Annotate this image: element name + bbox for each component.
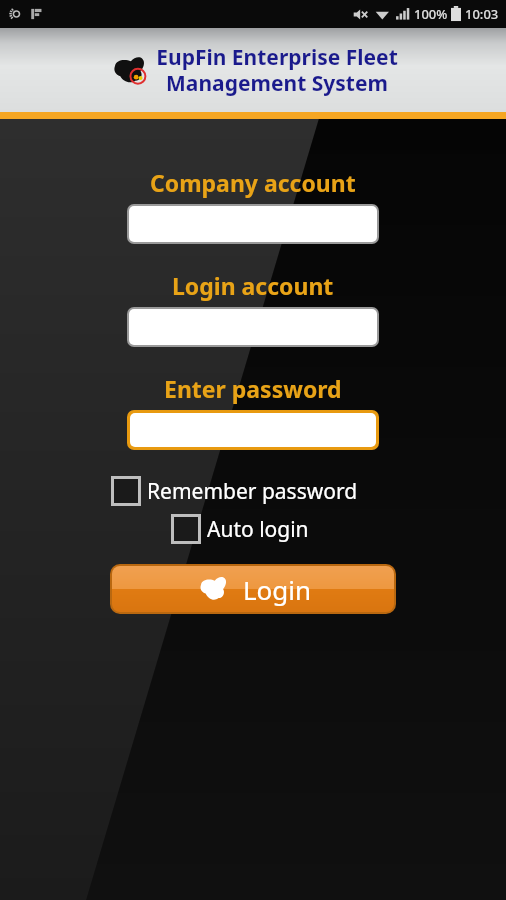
button[interactable]: Remember password	[111, 476, 395, 506]
staticText: Remember password	[147, 477, 358, 506]
staticText: 100%	[414, 5, 448, 23]
staticText: 10:03	[465, 5, 499, 23]
button[interactable]: Login	[112, 566, 394, 612]
staticText: Auto login	[207, 515, 309, 544]
button[interactable]: Auto login	[171, 514, 395, 544]
staticText: Company account	[150, 167, 356, 198]
staticText: Login account	[172, 270, 334, 301]
button[interactable]	[130, 413, 376, 447]
staticText: EupFin Enterprise Fleet Management Syste…	[156, 43, 398, 98]
staticText: Enter password	[164, 373, 342, 404]
button[interactable]	[129, 206, 377, 242]
button[interactable]	[129, 309, 377, 345]
staticText: Login	[243, 572, 312, 607]
